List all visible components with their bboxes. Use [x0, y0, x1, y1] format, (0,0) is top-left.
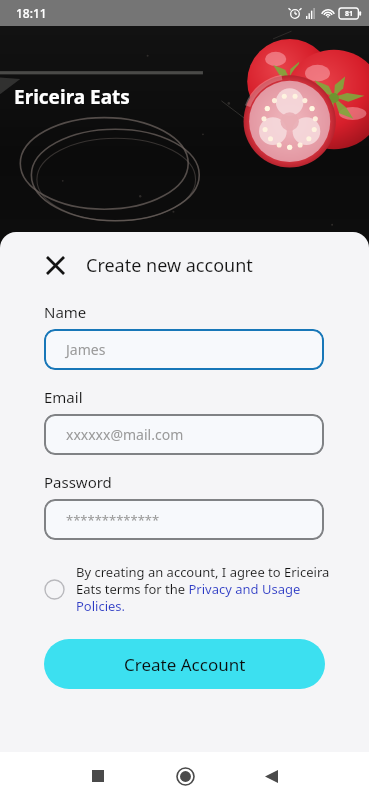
button[interactable]: Close	[38, 248, 72, 282]
staticText: James	[66, 340, 106, 359]
staticText: Name	[44, 302, 87, 322]
button[interactable]: Recent apps	[78, 756, 118, 796]
button[interactable]: Create Account	[44, 639, 325, 689]
staticText: Password	[44, 472, 112, 492]
staticText: Email	[44, 387, 83, 407]
staticText: Create Account	[124, 653, 246, 676]
staticText: xxxxxx@mail.com	[66, 425, 184, 444]
staticText: 18:11	[16, 5, 47, 21]
button[interactable]: xxxxxx@mail.com	[44, 414, 324, 455]
staticText: *************	[66, 511, 160, 529]
button[interactable]: By creating an account, I agree to Erice…	[44, 563, 339, 615]
staticText: By creating an account, I agree to Erice…	[76, 563, 339, 615]
staticText: Create new account	[86, 253, 253, 278]
button[interactable]: James	[44, 329, 324, 370]
button[interactable]: Home	[165, 756, 205, 796]
staticText: Ericeira Eats	[14, 84, 130, 110]
staticText: 81	[345, 9, 354, 19]
button[interactable]: Back	[251, 756, 291, 796]
button[interactable]: *************	[44, 499, 324, 540]
